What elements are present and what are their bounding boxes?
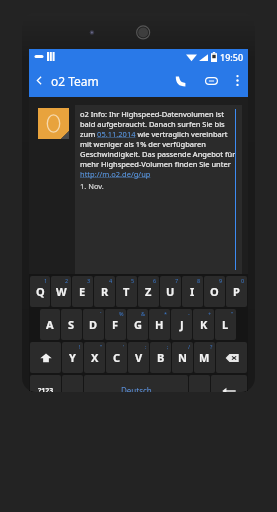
- button[interactable]: I: [182, 276, 203, 307]
- button[interactable]: U: [160, 276, 181, 307]
- button[interactable]: H: [149, 309, 170, 340]
- staticText: 2: [65, 277, 69, 284]
- button[interactable]: B: [150, 342, 171, 373]
- button[interactable]: ?123: [30, 375, 61, 392]
- button[interactable]: Back: [29, 64, 49, 97]
- staticText: +: [208, 310, 212, 317]
- staticText: 6: [153, 277, 157, 284]
- staticText: 9: [219, 277, 223, 284]
- staticText: 7: [175, 277, 179, 284]
- staticText: ?123: [38, 386, 54, 392]
- staticText: C: [113, 350, 121, 365]
- button[interactable]: Q: [30, 276, 50, 307]
- staticText: ;: [167, 343, 169, 350]
- staticText: T: [123, 284, 130, 299]
- button[interactable]: Call: [166, 64, 196, 97]
- staticText: Deutsch: [121, 385, 152, 392]
- staticText: E: [79, 284, 86, 299]
- staticText: S: [68, 317, 75, 332]
- staticText: K: [200, 317, 208, 332]
- staticText: 1: [44, 277, 48, 284]
- button[interactable]: D: [83, 309, 104, 340]
- button[interactable]: R: [94, 276, 115, 307]
- button[interactable]: J: [171, 309, 192, 340]
- staticText: 5: [131, 277, 135, 284]
- staticText: &: [141, 310, 146, 317]
- staticText: L: [222, 317, 229, 332]
- staticText: ': [123, 343, 125, 350]
- staticText: H: [155, 317, 164, 332]
- staticText: B: [157, 350, 165, 365]
- button[interactable]: A: [40, 309, 60, 340]
- button[interactable]: T: [116, 276, 137, 307]
- button[interactable]: M: [194, 342, 215, 373]
- button[interactable]: Shift: [30, 342, 61, 373]
- button[interactable]: Y: [62, 342, 83, 373]
- staticText: O: [210, 284, 219, 299]
- staticText: ´: [100, 310, 102, 317]
- staticText: V: [135, 350, 143, 365]
- button[interactable]: E: [72, 276, 93, 307]
- staticText: A: [46, 317, 54, 332]
- button[interactable]: K: [193, 309, 214, 340]
- staticText: N: [178, 350, 187, 365]
- button[interactable]: N: [172, 342, 193, 373]
- staticText: 4: [109, 277, 113, 284]
- staticText: ": [100, 343, 103, 350]
- button[interactable]: o2 Info: Ihr Highspeed-Datenvolumen ist …: [38, 105, 242, 274]
- button[interactable]: O: [204, 276, 225, 307]
- staticText: Y: [69, 350, 76, 365]
- staticText: o2 Info: Ihr Highspeed-Datenvolumen ist …: [80, 109, 236, 179]
- staticText: o2 Team: [51, 73, 99, 89]
- staticText: X: [91, 350, 99, 365]
- button[interactable]: Space: [84, 375, 188, 392]
- staticText: /: [188, 343, 191, 350]
- button[interactable]: Backspace: [216, 342, 247, 373]
- staticText: D: [89, 317, 98, 332]
- button[interactable]: V: [128, 342, 149, 373]
- staticText: M: [199, 350, 210, 365]
- staticText: 3: [87, 277, 91, 284]
- staticText: W: [56, 284, 67, 299]
- button[interactable]: P: [226, 276, 247, 307]
- staticText: 1. Nov.: [80, 181, 104, 191]
- staticText: U: [166, 284, 175, 299]
- staticText: 19:50: [220, 51, 244, 63]
- button[interactable]: Enter: [211, 375, 247, 392]
- staticText: !: [79, 343, 81, 350]
- staticText: Q: [36, 284, 45, 299]
- staticText: F: [112, 317, 119, 332]
- staticText: 0: [241, 277, 245, 284]
- staticText: 8: [197, 277, 201, 284]
- button[interactable]: W: [51, 276, 71, 307]
- staticText: :: [145, 343, 147, 350]
- staticText: J: [180, 317, 184, 332]
- button[interactable]: L: [215, 309, 236, 340]
- button[interactable]: Attach: [196, 64, 226, 97]
- button[interactable]: More options: [226, 64, 248, 97]
- staticText: -: [188, 310, 190, 317]
- button[interactable]: X: [84, 342, 105, 373]
- staticText: R: [101, 284, 109, 299]
- button[interactable]: Z: [138, 276, 159, 307]
- button[interactable]: G: [127, 309, 148, 340]
- staticText: G: [134, 317, 142, 332]
- staticText: %: [119, 310, 124, 317]
- staticText: ": [231, 310, 234, 317]
- button[interactable]: S: [61, 309, 82, 340]
- button[interactable]: C: [106, 342, 127, 373]
- button[interactable]: F: [105, 309, 126, 340]
- staticText: ?: [210, 343, 213, 350]
- staticText: I: [190, 284, 195, 299]
- staticText: *: [164, 310, 168, 317]
- staticText: P: [233, 284, 240, 299]
- staticText: Z: [145, 284, 152, 299]
